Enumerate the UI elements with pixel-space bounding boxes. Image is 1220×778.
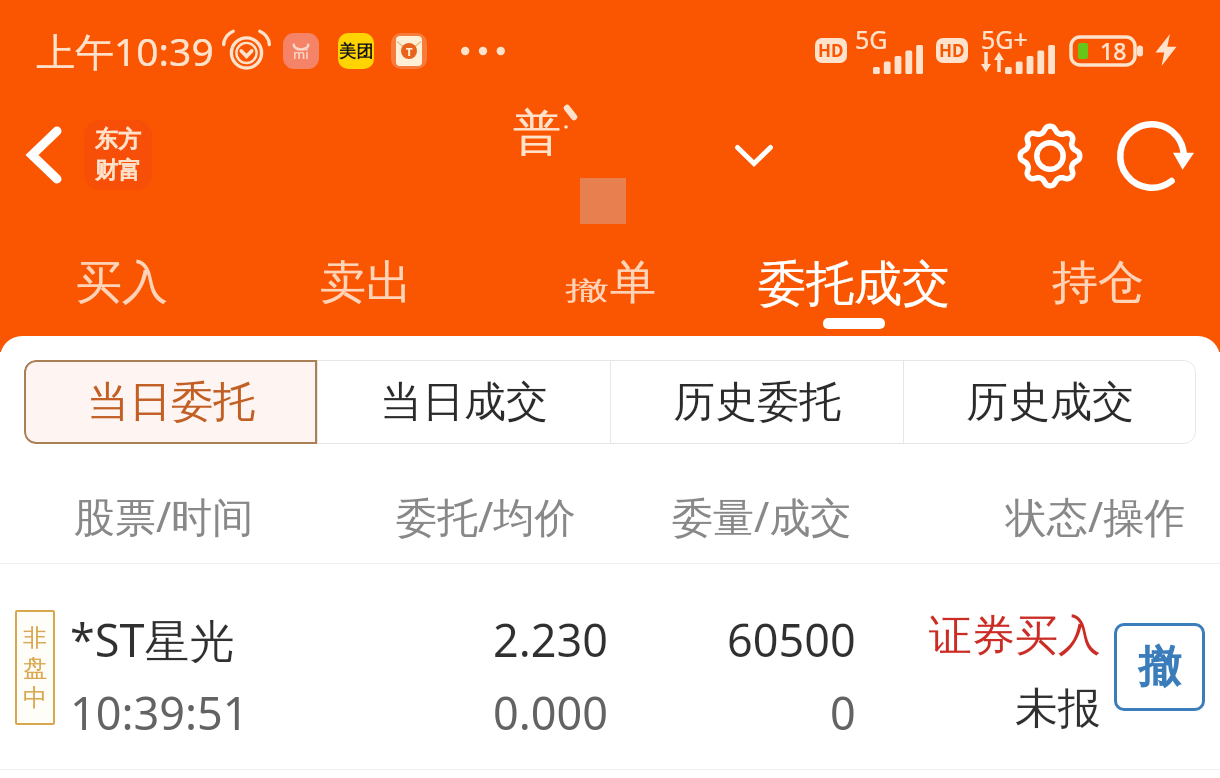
staticText: 买入: [76, 254, 168, 312]
staticText: 10:39:51: [70, 682, 249, 743]
staticText: 委托/均价: [396, 488, 576, 544]
staticText: 当日成交: [380, 376, 548, 429]
staticText: 历史成交: [966, 376, 1134, 429]
staticText: mi: [293, 45, 309, 63]
button[interactable]: Refresh: [1114, 118, 1190, 194]
staticText: 5G: [855, 22, 888, 56]
button[interactable]: 非: [0, 564, 1220, 769]
staticText: 撤: [565, 275, 609, 307]
staticText: 单: [610, 254, 656, 312]
staticText: 2.230: [493, 609, 609, 670]
staticText: 状态/操作: [1006, 488, 1186, 544]
staticText: T: [406, 44, 413, 59]
button[interactable]: 历史成交: [904, 360, 1196, 444]
button[interactable]: 东方: [84, 120, 152, 190]
staticText: 5G+: [981, 22, 1028, 56]
staticText: 委托成交: [758, 254, 950, 314]
staticText: 股票/时间: [74, 488, 254, 544]
staticText: 财富: [95, 156, 141, 185]
staticText: 0.000: [493, 682, 609, 743]
staticText: 盘: [23, 653, 47, 683]
staticText: 中: [23, 683, 47, 713]
button[interactable]: 当日委托: [24, 360, 317, 444]
staticText: 18: [1100, 35, 1127, 66]
button[interactable]: 当日委托: [24, 360, 317, 444]
staticText: 委量/成交: [672, 488, 852, 544]
staticText: 历史委托: [673, 376, 841, 429]
button[interactable]: 委托成交: [732, 242, 976, 352]
button[interactable]: 持仓: [976, 242, 1220, 352]
button[interactable]: 买入: [0, 242, 244, 352]
button[interactable]: 撤: [1114, 623, 1205, 711]
button[interactable]: 历史委托: [611, 360, 903, 444]
staticText: 非: [23, 623, 47, 653]
staticText: HD: [939, 39, 965, 62]
staticText: 普: [513, 103, 561, 163]
button[interactable]: Back: [12, 120, 76, 190]
staticText: 0: [830, 682, 856, 743]
staticText: 60500: [727, 609, 856, 670]
staticText: 持仓: [1052, 254, 1144, 312]
staticText: 上午10:39: [36, 24, 214, 77]
staticText: 撤: [1138, 640, 1181, 694]
staticText: 当日委托: [87, 376, 255, 429]
button[interactable]: 当日成交: [318, 360, 610, 444]
button[interactable]: 卖出: [244, 242, 488, 352]
staticText: 当日委托: [87, 376, 255, 429]
staticText: *ST星光: [70, 609, 235, 670]
staticText: 卖出: [320, 254, 412, 312]
button[interactable]: 撤: [488, 242, 732, 352]
staticText: 美团: [339, 41, 373, 62]
staticText: HD: [818, 39, 844, 62]
button[interactable]: Expand account: [716, 117, 792, 193]
staticText: 证券买入: [929, 609, 1101, 663]
staticText: 东方: [95, 125, 141, 154]
button[interactable]: Settings: [1012, 118, 1088, 194]
staticText: 未报: [1015, 682, 1101, 736]
